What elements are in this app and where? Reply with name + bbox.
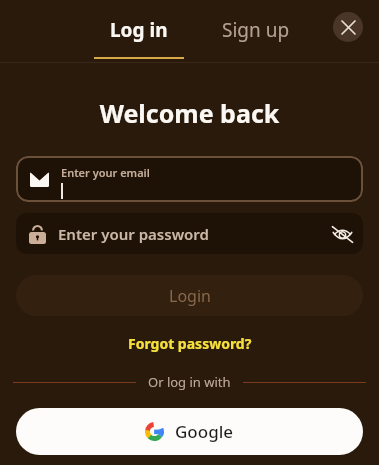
- staticText: Sign up: [222, 17, 290, 43]
- staticText: Welcome back: [0, 96, 379, 130]
- button[interactable]: Enter your password: [16, 213, 363, 254]
- staticText: Enter your password: [58, 224, 209, 244]
- button[interactable]: Log in: [80, 0, 198, 59]
- staticText: Log in: [110, 17, 168, 43]
- staticText: Enter your email: [61, 165, 150, 180]
- staticText: Google: [175, 420, 234, 443]
- button[interactable]: Show password: [325, 217, 359, 251]
- button[interactable]: Sign up: [212, 0, 300, 43]
- staticText: Login: [169, 285, 211, 307]
- staticText: Or log in with: [148, 373, 231, 391]
- button[interactable]: Close: [333, 12, 363, 42]
- button[interactable]: Enter your email: [16, 156, 363, 202]
- button[interactable]: Google: [16, 408, 363, 455]
- button[interactable]: Login: [16, 275, 363, 316]
- staticText: Forgot password?: [128, 334, 252, 353]
- button[interactable]: Forgot password?: [120, 332, 260, 355]
